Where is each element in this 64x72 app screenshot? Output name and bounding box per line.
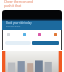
staticText: Cheer them on and	[4, 0, 33, 4]
button[interactable]: Favourites	[38, 33, 41, 36]
button[interactable]: Event photo	[2, 51, 62, 72]
staticText: push it that	[4, 4, 22, 8]
staticText: Book your ride today	[6, 21, 32, 25]
button[interactable]: Search	[5, 41, 31, 45]
button[interactable]: Explore	[23, 33, 26, 36]
button[interactable]: More	[54, 33, 57, 36]
staticText: and feel great	[6, 25, 21, 28]
button[interactable]: Hero banner	[2, 10, 62, 30]
button[interactable]	[32, 41, 59, 45]
